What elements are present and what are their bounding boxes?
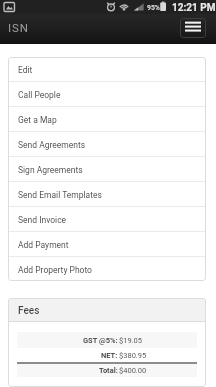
button[interactable]: Send Agreements — [8, 132, 206, 156]
staticText: $380.95 — [119, 351, 147, 360]
staticText: Sign Agreements — [18, 165, 83, 175]
staticText: $400.00 — [119, 366, 147, 375]
staticText: Total: — [99, 366, 118, 375]
staticText: 95% — [147, 4, 160, 12]
staticText: Call People — [18, 90, 61, 100]
staticText: 12:21 PM — [172, 2, 216, 14]
staticText: Add Property Photo — [18, 265, 92, 275]
staticText: GST @5%: — [83, 336, 118, 345]
staticText: Fees — [18, 305, 40, 317]
staticText: Send Agreements — [18, 140, 86, 150]
button[interactable]: Get a Map — [8, 107, 206, 131]
staticText: Send Email Templates — [18, 190, 102, 200]
button[interactable]: Open navigation menu — [180, 18, 206, 38]
button[interactable]: Edit — [8, 57, 206, 81]
button[interactable]: Call People — [8, 82, 206, 106]
staticText: Add Payment — [18, 240, 69, 250]
button[interactable]: Send Invoice — [8, 207, 206, 231]
button[interactable]: Add Property Photo — [8, 257, 206, 281]
staticText: Send Invoice — [18, 215, 67, 225]
staticText: Edit — [18, 65, 33, 75]
button[interactable]: Add Payment — [8, 232, 206, 256]
staticText: Get a Map — [18, 115, 57, 125]
button[interactable]: Send Email Templates — [8, 182, 206, 206]
staticText: $19.05 — [119, 336, 143, 345]
staticText: ISN — [8, 21, 29, 34]
staticText: NET: — [101, 351, 118, 360]
button[interactable]: Sign Agreements — [8, 157, 206, 181]
